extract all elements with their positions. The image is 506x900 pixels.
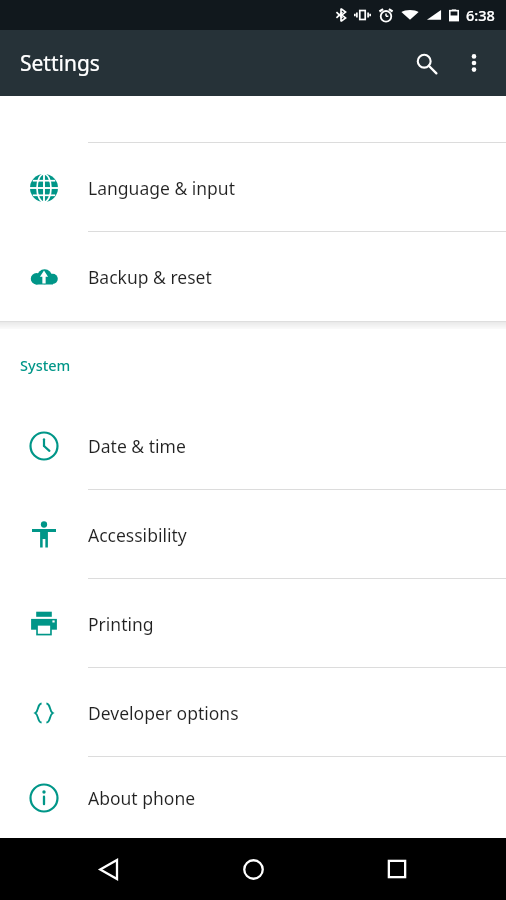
staticText: Settings [20, 49, 100, 78]
button[interactable]: Developer options [0, 668, 506, 757]
staticText: Accessibility [88, 523, 187, 547]
button[interactable]: Printing [0, 579, 506, 668]
staticText: Printing [88, 612, 154, 636]
button[interactable]: Back [74, 838, 144, 900]
button[interactable]: Accessibility [0, 490, 506, 579]
button[interactable]: About phone [0, 757, 506, 838]
button[interactable]: Backup & reset [0, 232, 506, 321]
staticText: Developer options [88, 701, 239, 725]
button[interactable]: Language & input [0, 143, 506, 232]
staticText: About phone [88, 786, 196, 810]
button[interactable]: More options [450, 39, 498, 87]
staticText: Language & input [88, 176, 235, 200]
button[interactable]: Search [402, 39, 450, 87]
button[interactable]: Google [0, 96, 506, 143]
staticText: System [20, 355, 71, 375]
button[interactable]: Home [218, 838, 288, 900]
staticText: 6:38 [466, 5, 495, 25]
button[interactable]: Date & time [0, 401, 506, 490]
staticText: Date & time [88, 434, 186, 458]
staticText: Backup & reset [88, 265, 212, 289]
button[interactable]: Recents [362, 838, 432, 900]
